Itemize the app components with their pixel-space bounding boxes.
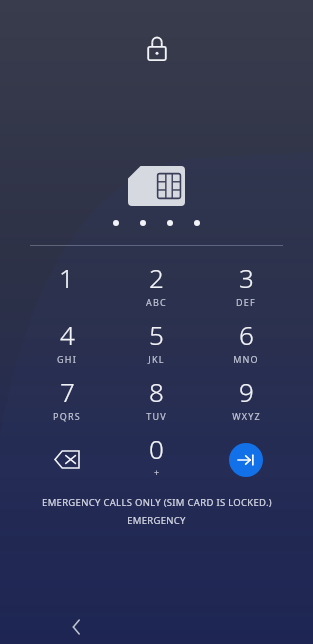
staticText: 6 (239, 317, 254, 352)
staticText: TUV (146, 410, 167, 422)
staticText: ABC (146, 296, 167, 308)
button[interactable]: 7 (22, 374, 111, 431)
button[interactable]: EMERGENCY (127, 514, 186, 527)
button[interactable]: 4 (22, 317, 111, 374)
staticText: 5 (149, 317, 164, 352)
button[interactable]: Back (62, 613, 90, 641)
staticText: 7 (60, 374, 75, 409)
staticText: WXYZ (232, 410, 261, 422)
button[interactable]: Backspace (22, 431, 111, 488)
button[interactable]: 9 (201, 374, 291, 431)
staticText: PQRS (53, 410, 81, 422)
button[interactable]: 3 (201, 260, 291, 317)
other: Locked (146, 36, 168, 62)
button[interactable]: 8 (111, 374, 201, 431)
staticText: JKL (148, 353, 165, 365)
button[interactable]: 1 (22, 260, 111, 317)
staticText: 8 (149, 374, 164, 409)
button[interactable]: 0 (111, 431, 201, 488)
staticText: 4 (60, 317, 75, 352)
button[interactable]: Enter (229, 443, 263, 477)
button[interactable]: 2 (111, 260, 201, 317)
button[interactable]: 6 (201, 317, 291, 374)
staticText: EMERGENCY CALLS ONLY (SIM CARD IS LOCKED… (42, 496, 272, 509)
staticText: 3 (239, 260, 254, 295)
staticText: EMERGENCY (127, 514, 186, 527)
button[interactable]: 5 (111, 317, 201, 374)
staticText: 0 (149, 431, 164, 466)
staticText: MNO (233, 353, 259, 365)
staticText: 1 (59, 260, 74, 295)
staticText: 9 (239, 374, 254, 409)
staticText: DEF (236, 296, 256, 308)
staticText: GHI (57, 353, 77, 365)
staticText: 2 (149, 260, 164, 295)
staticText: + (154, 466, 160, 478)
